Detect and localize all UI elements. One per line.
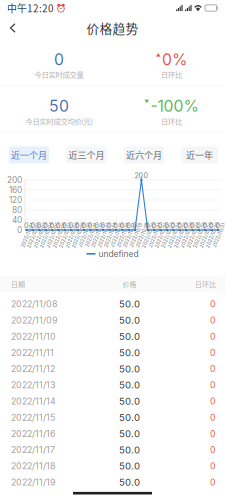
staticText: 0 (210, 428, 216, 439)
staticText: 0 (69, 221, 74, 230)
staticText: 价格趋势 (86, 19, 138, 37)
staticText: 中午12:20 (7, 1, 54, 15)
staticText: 50.0 (119, 347, 140, 358)
staticText: 40 (12, 215, 22, 225)
staticText: 价格 (122, 279, 136, 289)
staticText: 0% (162, 50, 187, 69)
staticText: 50.0 (119, 331, 140, 342)
staticText: 2022/10/04 (33, 232, 60, 238)
staticText: 2022/11/16 (11, 428, 55, 439)
staticText: 50.0 (119, 363, 140, 375)
staticText: undefined (98, 249, 138, 259)
staticText: 2022/11/12 (11, 364, 55, 374)
button[interactable]: 近三个月 (66, 146, 107, 163)
button[interactable]: Back (2, 16, 24, 40)
staticText: 0 (210, 477, 216, 488)
staticText: 0 (152, 221, 157, 230)
staticText: 日环比 (161, 69, 182, 80)
staticText: 0 (126, 221, 131, 230)
staticText: 0 (210, 315, 216, 326)
staticText: 2022/10/21 (142, 232, 168, 238)
staticText: 0 (210, 364, 216, 374)
staticText: 50.0 (119, 444, 140, 456)
staticText: 日期 (11, 279, 25, 289)
staticText: 2022/11/15 (11, 412, 55, 423)
staticText: 0 (210, 396, 216, 407)
button[interactable]: 近六个月 (124, 146, 164, 163)
staticText: 2022/10/29 (193, 232, 220, 238)
staticText: 200 (7, 175, 22, 185)
staticText: 2022/10/13 (91, 232, 117, 238)
staticText: 0 (132, 221, 137, 230)
staticText: 日环比 (195, 279, 216, 289)
staticText: 日环比 (161, 116, 182, 126)
staticText: 0 (30, 221, 35, 230)
staticText: 0 (210, 331, 216, 342)
staticText: 2022/11/08 (11, 299, 57, 309)
staticText: 2022/10/22 (148, 232, 175, 238)
staticText: 0 (145, 221, 150, 230)
staticText: 0 (210, 380, 216, 390)
staticText: 0 (49, 221, 54, 230)
staticText: 0 (54, 50, 64, 69)
staticText: 0 (210, 299, 216, 309)
staticText: 0 (190, 221, 195, 230)
staticText: 0 (210, 461, 216, 471)
staticText: 0 (210, 347, 216, 358)
staticText: 2022/10/15 (104, 232, 130, 238)
staticText: 2022/10/27 (180, 232, 207, 238)
staticText: 近三个月 (68, 148, 104, 161)
staticText: 2022/11/18 (11, 461, 55, 471)
staticText: 50.0 (119, 412, 140, 423)
staticText: -100% (150, 97, 198, 116)
staticText: 近六个月 (126, 148, 162, 161)
staticText: 0 (37, 221, 42, 230)
staticText: 120 (9, 195, 22, 205)
staticText: 50.0 (119, 379, 140, 391)
staticText: 0 (75, 221, 80, 230)
staticText: 50.0 (119, 298, 140, 310)
staticText: 2022/10/28 (186, 232, 213, 238)
staticText: 0 (158, 221, 163, 230)
staticText: 2022/10/23 (154, 232, 181, 238)
staticText: 2022/11/09 (11, 315, 57, 326)
staticText: 0 (171, 221, 176, 230)
staticText: 2022/10/10 (72, 232, 98, 238)
staticText: 80 (12, 205, 22, 215)
staticText: 0 (94, 221, 99, 230)
staticText: 0 (164, 221, 169, 230)
staticText: 2022/10/12 (85, 232, 111, 238)
staticText: 160 (9, 185, 22, 195)
staticText: 200 (134, 171, 148, 180)
staticText: 0 (210, 412, 216, 423)
staticText: 2022/10/16 (110, 232, 136, 238)
staticText: 2022/11/10 (11, 331, 56, 342)
staticText: 0 (215, 221, 220, 230)
staticText: 50.0 (119, 476, 140, 488)
staticText: 2022/10/14 (97, 232, 123, 238)
staticText: 2022/10/24 (161, 232, 188, 238)
staticText: ⏰ (54, 2, 66, 14)
staticText: 近一个月 (11, 148, 47, 161)
staticText: 0 (210, 445, 216, 455)
staticText: 2022/10/30 (199, 232, 225, 238)
button[interactable]: 近一个月 (9, 146, 49, 163)
staticText: 2022/10/09 (65, 232, 92, 238)
staticText: 0 (81, 221, 86, 230)
staticText: 2022/10/05 (39, 232, 66, 238)
staticText: 0 (24, 221, 29, 230)
staticText: 2022/11/19 (11, 477, 55, 488)
button[interactable]: 近一年 (181, 146, 218, 163)
staticText: 今日实时成交均价(元) (25, 116, 92, 126)
staticText: 0 (113, 221, 118, 230)
staticText: 0 (177, 221, 182, 230)
staticText: 50.0 (119, 314, 140, 326)
staticText: 2022/10/25 (167, 232, 194, 238)
staticText: 0 (120, 221, 125, 230)
staticText: 50 (49, 97, 69, 116)
staticText: 2022/10/17 (117, 232, 143, 238)
staticText: 2022/10/11 (79, 232, 104, 238)
staticText: 2022/11/13 (11, 380, 55, 390)
staticText: 0 (196, 221, 201, 230)
staticText: 2022/11/17 (11, 445, 55, 455)
